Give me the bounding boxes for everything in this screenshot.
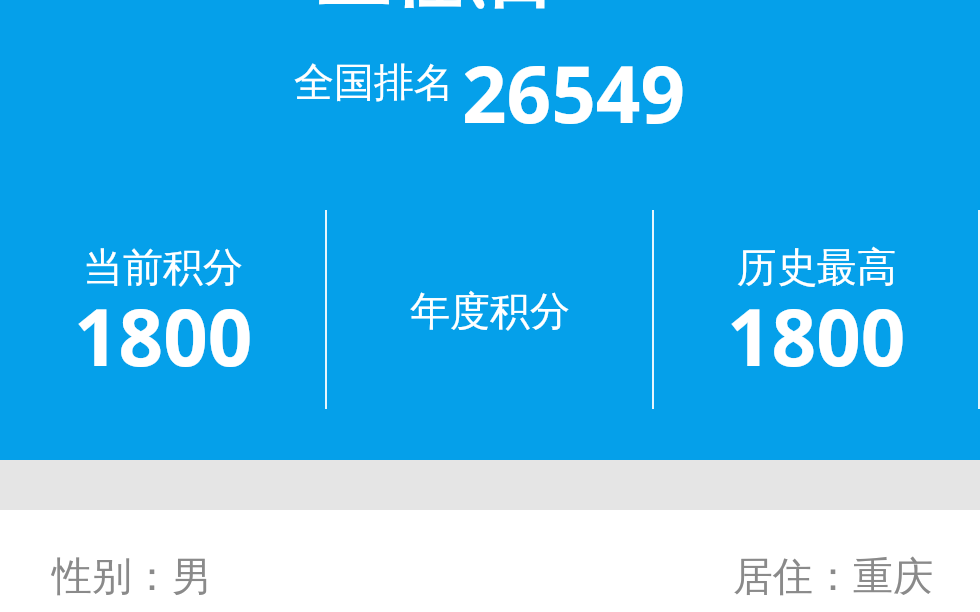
staticText: 里程、 — [318, 0, 531, 21]
staticText: 目 — [485, 0, 556, 21]
staticText: 26549 — [462, 40, 686, 146]
button[interactable]: 历史最高 — [653, 0, 980, 460]
staticText: 1800 — [727, 283, 906, 389]
button[interactable]: 全国排名 — [294, 47, 686, 153]
button[interactable]: 年度积分 — [326, 0, 653, 460]
staticText: 历史最高 — [737, 242, 897, 292]
staticText: 年度积分 — [410, 286, 570, 336]
staticText: 全国排名 — [294, 57, 454, 107]
staticText: 居住：重庆 — [733, 551, 933, 601]
button[interactable]: 性别：男 — [0, 510, 980, 612]
staticText: 当前积分 — [83, 242, 243, 292]
staticText: 1800 — [74, 283, 253, 389]
staticText: 性别：男 — [52, 551, 212, 601]
button[interactable]: 当前积分 — [0, 0, 326, 460]
